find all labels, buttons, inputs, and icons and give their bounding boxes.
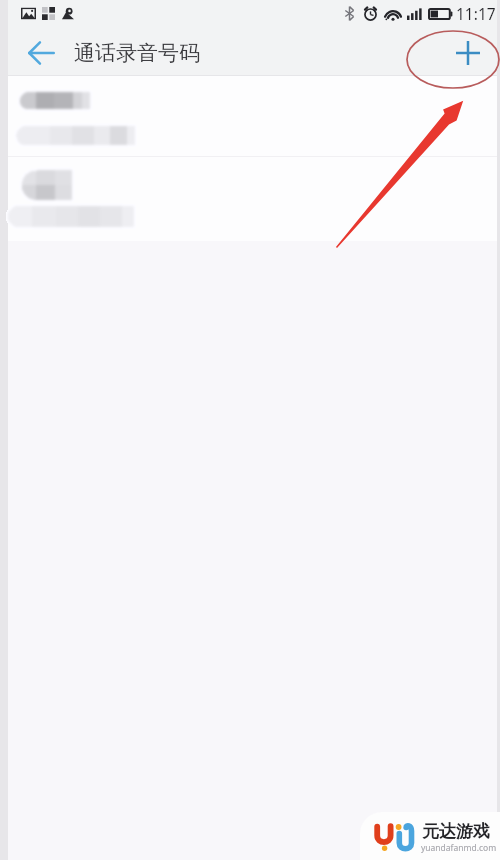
staticText: yuandafanmd.com [421,842,497,854]
button[interactable] [8,76,497,156]
staticText: 元达游戏 [422,821,490,842]
staticText: 通话录音号码 [74,40,200,66]
staticText: 11:17 [456,3,496,24]
button[interactable]: Add [447,26,497,76]
button[interactable] [8,157,497,241]
button[interactable]: Back [8,26,66,76]
